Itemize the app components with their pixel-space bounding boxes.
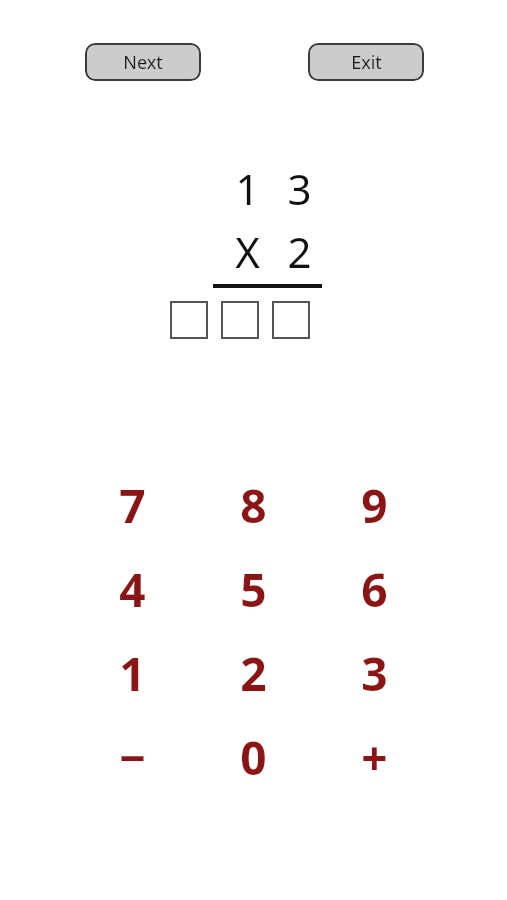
staticText: 6 bbox=[361, 558, 388, 621]
staticText: 0 bbox=[240, 726, 267, 789]
button[interactable] bbox=[272, 301, 310, 339]
button[interactable]: − bbox=[72, 715, 193, 799]
button[interactable] bbox=[170, 301, 208, 339]
button[interactable]: 9 bbox=[314, 463, 435, 547]
staticText: 4 bbox=[119, 558, 146, 621]
staticText: + bbox=[361, 726, 388, 789]
staticText: X bbox=[235, 223, 260, 280]
button[interactable]: 5 bbox=[193, 547, 314, 631]
button[interactable]: 3 bbox=[314, 631, 435, 715]
button[interactable]: 8 bbox=[193, 463, 314, 547]
button[interactable]: 2 bbox=[193, 631, 314, 715]
button[interactable]: 0 bbox=[193, 715, 314, 799]
staticText: 7 bbox=[119, 474, 146, 537]
button[interactable] bbox=[221, 301, 259, 339]
button[interactable]: + bbox=[314, 715, 435, 799]
staticText: 9 bbox=[361, 474, 388, 537]
staticText: 8 bbox=[240, 474, 267, 537]
staticText: 2 bbox=[240, 642, 267, 705]
button[interactable]: Next bbox=[85, 43, 201, 81]
staticText: − bbox=[119, 726, 146, 789]
staticText: 1 bbox=[235, 160, 260, 217]
staticText: Exit bbox=[351, 50, 382, 75]
staticText: 1 bbox=[119, 642, 146, 705]
staticText: Next bbox=[123, 50, 163, 75]
staticText: 2 bbox=[287, 223, 312, 280]
button[interactable]: 4 bbox=[72, 547, 193, 631]
staticText: 3 bbox=[361, 642, 388, 705]
staticText: 5 bbox=[240, 558, 267, 621]
button[interactable]: 1 bbox=[72, 631, 193, 715]
button[interactable]: 7 bbox=[72, 463, 193, 547]
button[interactable]: 6 bbox=[314, 547, 435, 631]
staticText: 3 bbox=[287, 160, 312, 217]
button[interactable]: Exit bbox=[308, 43, 424, 81]
